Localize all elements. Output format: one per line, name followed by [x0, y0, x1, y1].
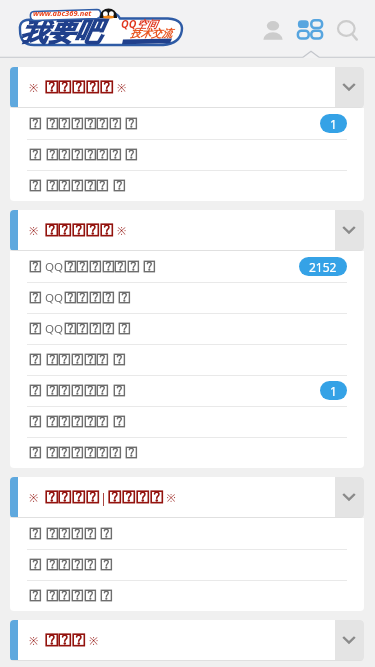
button[interactable]: [10, 170, 364, 201]
button[interactable]: [10, 518, 364, 549]
button[interactable]: Account: [253, 9, 291, 47]
button[interactable]: 1: [10, 375, 364, 406]
button[interactable]: Collapse section: [10, 210, 364, 251]
button[interactable]: [10, 437, 364, 468]
button[interactable]: Collapse section: [335, 210, 364, 250]
staticText: 1: [330, 116, 337, 132]
button[interactable]: Collapse section: [335, 67, 364, 107]
button[interactable]: [10, 406, 364, 437]
button[interactable]: [10, 549, 364, 580]
button[interactable]: Collapse section: [10, 620, 364, 661]
button[interactable]: [10, 313, 364, 344]
staticText: 1: [330, 383, 337, 399]
staticText: 2152: [309, 259, 337, 275]
button[interactable]: [10, 344, 364, 375]
button[interactable]: Collapse section: [10, 67, 364, 108]
button[interactable]: Search: [329, 9, 367, 47]
button[interactable]: 1: [10, 108, 364, 139]
button[interactable]: Categories: [291, 9, 329, 47]
button[interactable]: [10, 580, 364, 611]
button[interactable]: 2152: [10, 251, 364, 282]
button[interactable]: [10, 282, 364, 313]
button[interactable]: Collapse section: [10, 477, 364, 518]
button[interactable]: Collapse section: [335, 620, 364, 660]
button[interactable]: Collapse section: [335, 477, 364, 517]
button[interactable]: [10, 139, 364, 170]
